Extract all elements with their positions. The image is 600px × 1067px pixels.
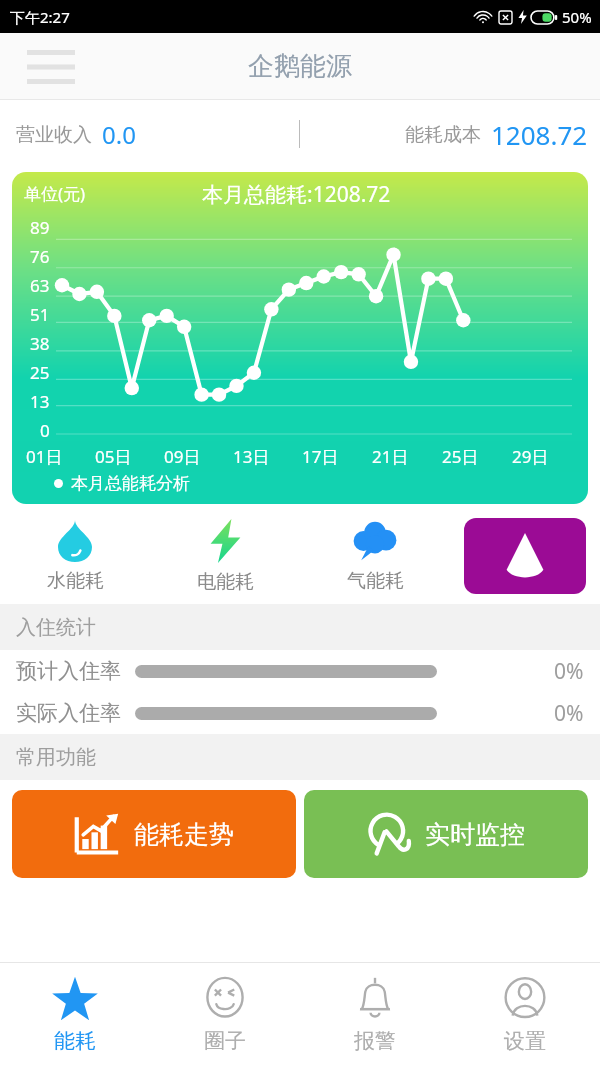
staticText: 09日 [164,445,201,468]
staticText: 预计入住率 [16,658,121,684]
staticText: 设置 [504,1028,546,1054]
staticText: 89 [30,216,50,239]
staticText: 13 [30,390,50,413]
button[interactable]: 气能耗 [300,508,450,604]
button[interactable]: 单位(元) [12,172,588,504]
button[interactable]: Menu [20,47,82,87]
staticText: 76 [30,245,50,268]
staticText: 本月总能耗:1208.72 [202,180,391,209]
button[interactable]: 报警 [300,963,450,1067]
staticText: 0 [40,419,50,442]
staticText: 实际入住率 [16,700,121,726]
staticText: 21日 [372,445,409,468]
staticText: 0% [554,699,584,728]
staticText: 气能耗 [347,569,404,593]
staticText: 25 [30,361,50,384]
staticText: 能耗走势 [134,819,234,850]
button[interactable]: Energy cone [464,518,586,594]
button[interactable]: 实际入住率 [0,692,600,734]
staticText: 05日 [95,445,132,468]
button[interactable]: 预计入住率 [0,650,600,692]
staticText: 常用功能 [16,745,96,770]
staticText: 50% [562,7,592,27]
button[interactable]: 电能耗 [150,508,300,604]
button[interactable]: 能耗走势 [12,790,296,878]
staticText: 入住统计 [16,615,96,640]
staticText: 电能耗 [197,570,254,594]
button[interactable]: 圈子 [150,963,300,1067]
staticText: 13日 [233,445,270,468]
staticText: 能耗 [54,1028,96,1054]
staticText: 51 [30,303,50,326]
button[interactable]: 实时监控 [304,790,588,878]
staticText: 报警 [354,1028,396,1054]
staticText: 营业收入 [16,123,92,147]
staticText: 本月总能耗分析 [71,473,190,494]
staticText: 圈子 [204,1028,246,1054]
staticText: 38 [30,332,50,355]
staticText: 63 [30,274,50,297]
staticText: 水能耗 [47,569,104,593]
staticText: 17日 [302,445,339,468]
button[interactable]: 水能耗 [0,508,150,604]
button[interactable]: 能耗 [0,963,150,1067]
staticText: 01日 [26,445,63,468]
staticText: 实时监控 [425,819,525,850]
staticText: 能耗成本 [405,123,481,147]
staticText: 29日 [512,445,549,468]
staticText: 企鹅能源 [248,50,352,83]
staticText: 单位(元) [24,182,86,205]
staticText: 25日 [442,445,479,468]
staticText: 1208.72 [491,117,588,152]
staticText: 下午2:27 [10,7,70,27]
button[interactable]: 设置 [450,963,600,1067]
staticText: 0.0 [102,118,136,151]
staticText: 0% [554,657,584,686]
